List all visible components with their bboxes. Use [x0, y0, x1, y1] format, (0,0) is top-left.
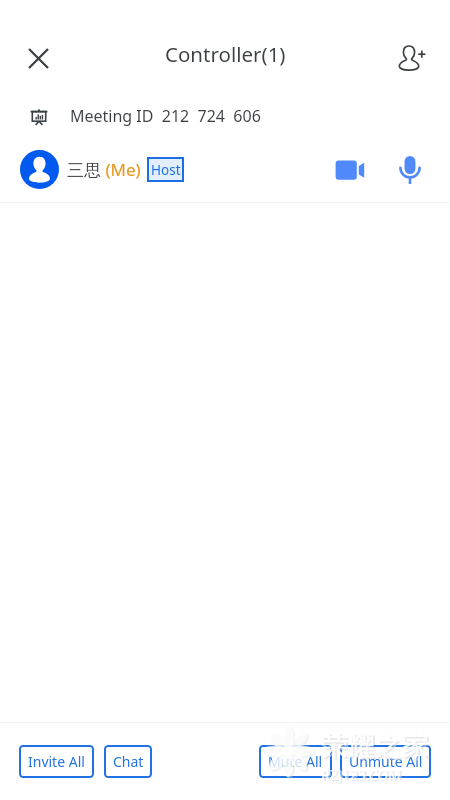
staticText: RZJ123.COM [321, 765, 401, 784]
button[interactable]: 三思 (Me) [0, 141, 450, 197]
staticText: Meeting ID 212 724 606 [70, 105, 261, 127]
staticText: RZJ123.COM [323, 766, 403, 785]
staticText: Mute All [268, 752, 323, 771]
staticText: Chat [113, 752, 144, 771]
staticText: 荣耀之家 [321, 729, 429, 763]
button[interactable]: Microphone [392, 149, 432, 189]
staticText: Controller(1) [165, 40, 286, 68]
staticText: 荣耀之家 [323, 731, 431, 765]
staticText: 三思 (Me) [67, 158, 141, 181]
button[interactable]: Camera [331, 149, 371, 189]
button[interactable]: Close [18, 38, 58, 78]
staticText: Unmute All [349, 752, 423, 771]
button[interactable]: Mute All [259, 745, 332, 778]
button[interactable]: Invite All [19, 745, 94, 778]
button[interactable]: Add participant [391, 37, 435, 81]
button[interactable]: Unmute All [340, 745, 431, 778]
button[interactable]: Chat [104, 745, 152, 778]
staticText: Invite All [28, 752, 85, 771]
staticText: Host [151, 161, 181, 179]
